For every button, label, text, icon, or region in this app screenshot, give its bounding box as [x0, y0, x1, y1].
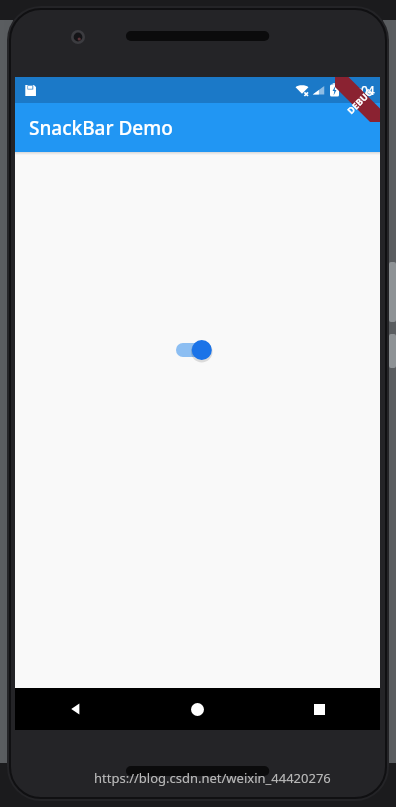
staticText: SnackBar Demo: [29, 115, 173, 141]
button[interactable]: Back: [15, 688, 136, 730]
button[interactable]: SnackBar Demo: [15, 103, 380, 152]
staticText: 11:04: [344, 82, 375, 98]
button[interactable]: Home: [136, 688, 258, 730]
staticText: https://blog.csdn.net/weixin_44420276: [94, 769, 331, 787]
staticText: DEBUG: [344, 86, 375, 116]
button[interactable]: Recent apps: [258, 688, 380, 730]
button[interactable]: Toggle: [176, 335, 220, 365]
